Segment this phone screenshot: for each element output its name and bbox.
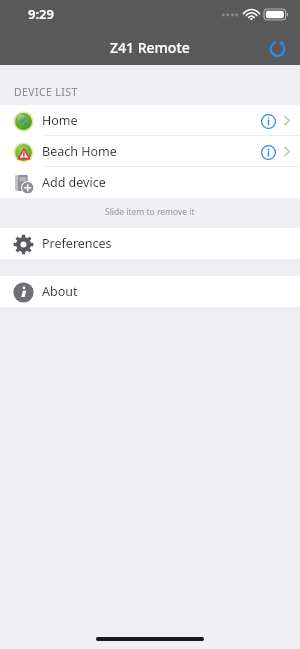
button[interactable]: Refresh bbox=[262, 33, 292, 63]
button[interactable]: Add device bbox=[0, 167, 300, 198]
staticText: Add device bbox=[42, 174, 106, 191]
staticText: 9:29 bbox=[28, 5, 54, 23]
button[interactable]: Preferences bbox=[0, 228, 300, 259]
button[interactable]: About bbox=[0, 276, 300, 307]
button[interactable]: Beach Home bbox=[0, 136, 300, 167]
staticText: Beach Home bbox=[42, 143, 117, 160]
staticText: DEVICE LIST bbox=[14, 85, 78, 99]
staticText: Preferences bbox=[42, 235, 112, 252]
staticText: Z41 Remote bbox=[110, 38, 190, 57]
button[interactable]: Info bbox=[258, 111, 278, 131]
button[interactable]: Info bbox=[258, 142, 278, 162]
staticText: Slide item to remove it bbox=[105, 206, 195, 218]
button[interactable]: Home bbox=[0, 105, 300, 136]
staticText: Home bbox=[42, 112, 78, 129]
staticText: About bbox=[42, 283, 78, 300]
